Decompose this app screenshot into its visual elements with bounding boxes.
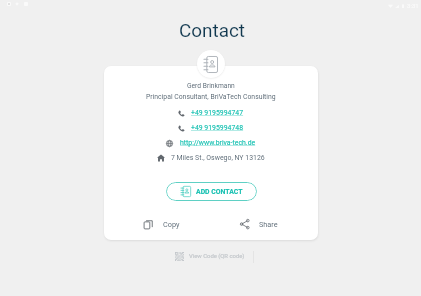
- button[interactable]: Share: [238, 217, 280, 231]
- staticText: 3:31: [407, 2, 419, 9]
- button[interactable]: ADD CONTACT: [166, 182, 257, 201]
- other: Copy: [143, 219, 154, 230]
- staticText: 7 Miles St., Oswego, NY 13126: [171, 154, 265, 162]
- staticText: Principal Consultant, BriVaTech Consulti…: [146, 93, 276, 101]
- staticText: Contact: [179, 19, 246, 41]
- staticText: Gerd Brinkmann: [187, 82, 235, 90]
- button[interactable]: Copy: [141, 217, 182, 232]
- staticText: Share: [259, 220, 278, 229]
- staticText: +49 9195994748: [191, 124, 244, 132]
- staticText: View Code (QR code): [189, 253, 245, 260]
- button[interactable]: http://www.briva-tech.de: [164, 138, 258, 148]
- staticText: Copy: [163, 220, 180, 229]
- button[interactable]: 7 Miles St., Oswego, NY 13126: [155, 153, 267, 163]
- button[interactable]: +49 9195994748: [176, 123, 246, 133]
- staticText: ADD CONTACT: [196, 188, 243, 196]
- staticText: +49 9195994747: [191, 109, 244, 117]
- button[interactable]: View Code (QR code): [173, 250, 247, 263]
- other: Share: [240, 219, 250, 229]
- button[interactable]: +49 9195994747: [176, 108, 246, 118]
- staticText: http://www.briva-tech.de: [180, 139, 256, 147]
